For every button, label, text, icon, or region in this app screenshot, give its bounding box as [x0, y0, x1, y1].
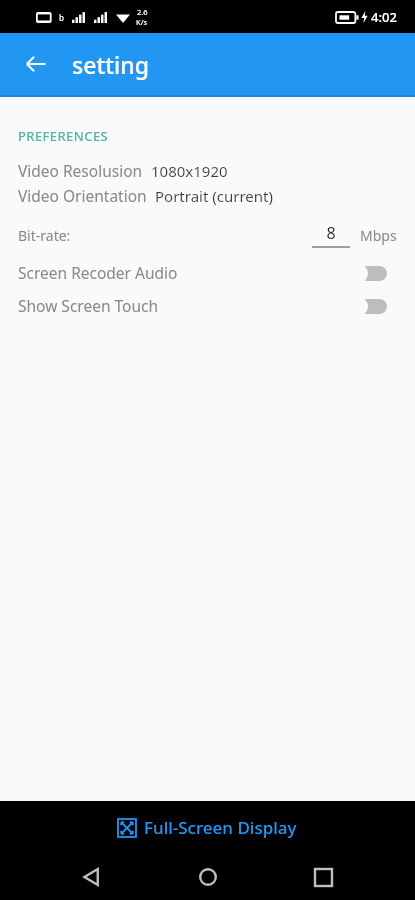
staticText: Screen Recoder Audio — [18, 262, 178, 283]
staticText: Show Screen Touch — [18, 295, 159, 316]
staticText: PREFERENCES — [18, 127, 109, 145]
button[interactable]: Bit-rate: — [0, 218, 415, 252]
button[interactable]: Back — [12, 40, 60, 88]
staticText: Video Orientation — [18, 185, 147, 206]
button[interactable]: Screen Recoder Audio — [0, 256, 415, 289]
staticText: 4:02 — [371, 8, 397, 26]
staticText: Portrait (current) — [155, 186, 273, 206]
button[interactable]: Recents — [300, 854, 346, 900]
staticText: 2.6 — [137, 7, 148, 17]
button[interactable]: Home — [185, 854, 231, 900]
staticText: 1080x1920 — [151, 161, 228, 181]
button[interactable]: Full-Screen Display — [0, 801, 415, 853]
button[interactable]: Show Screen Touch — [0, 289, 415, 322]
staticText: Mbps — [360, 226, 397, 245]
button[interactable]: Video Orientation — [0, 183, 415, 208]
button[interactable]: Back — [69, 854, 115, 900]
staticText: Video Resolusion — [18, 160, 143, 181]
staticText: setting — [72, 49, 149, 80]
staticText: b — [59, 12, 64, 23]
staticText: 8 — [326, 222, 336, 244]
staticText: Full-Screen Display — [144, 816, 297, 839]
button[interactable]: Video Resolusion — [0, 158, 415, 183]
staticText: Bit-rate: — [18, 226, 71, 245]
staticText: K/s — [136, 17, 148, 27]
